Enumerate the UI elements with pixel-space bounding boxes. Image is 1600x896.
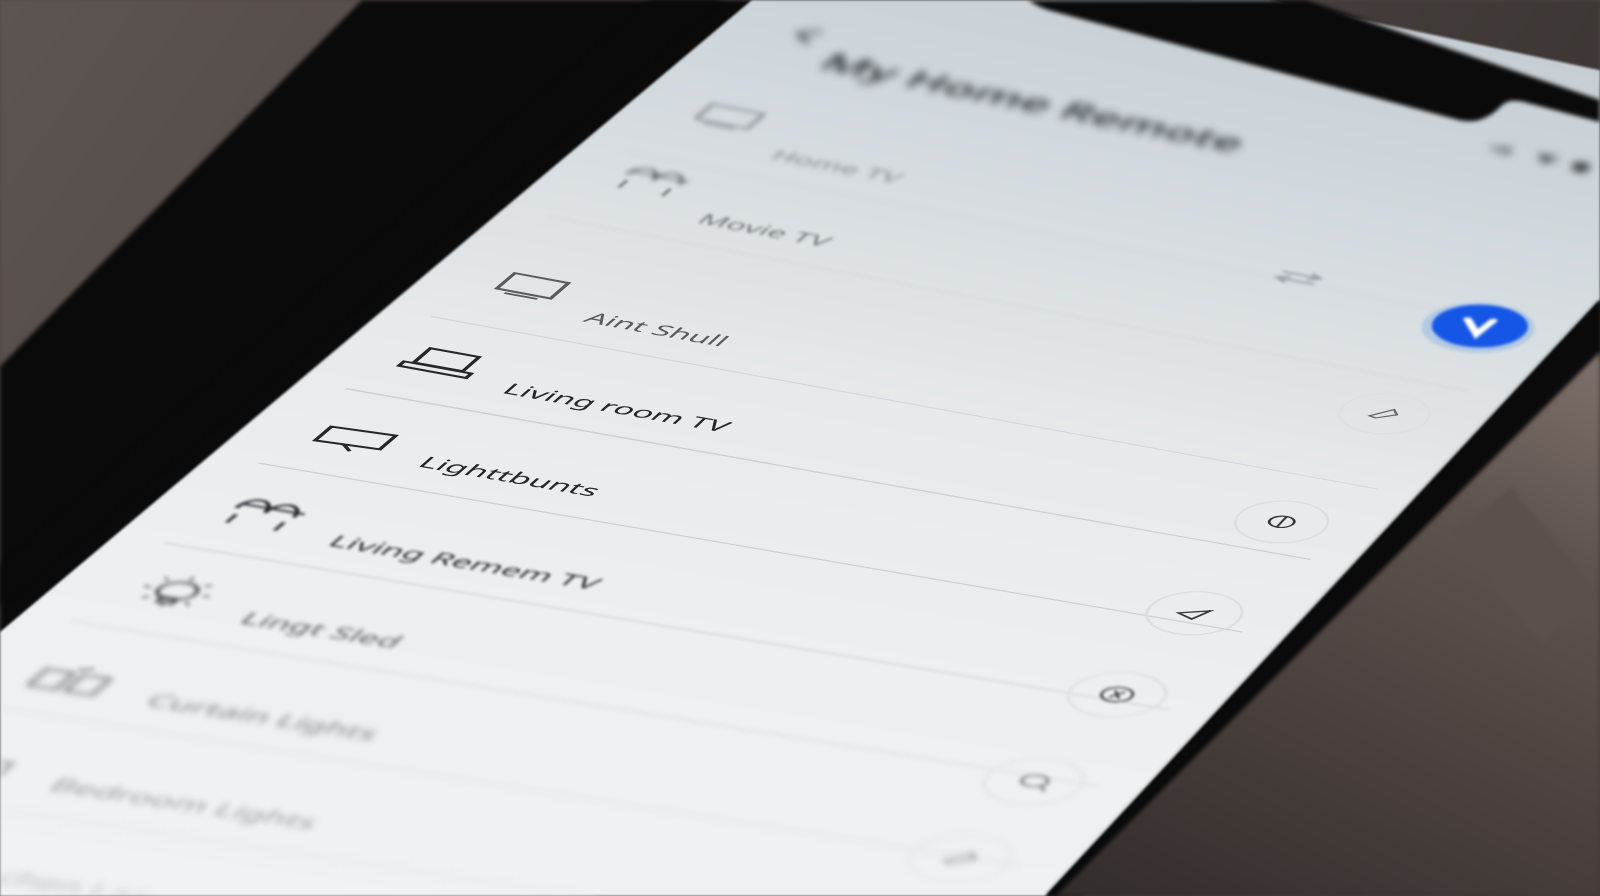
- button[interactable]: My Home Remote device list: [0, 0, 1600, 896]
- button[interactable]: Collapse: [0, 0, 1600, 896]
